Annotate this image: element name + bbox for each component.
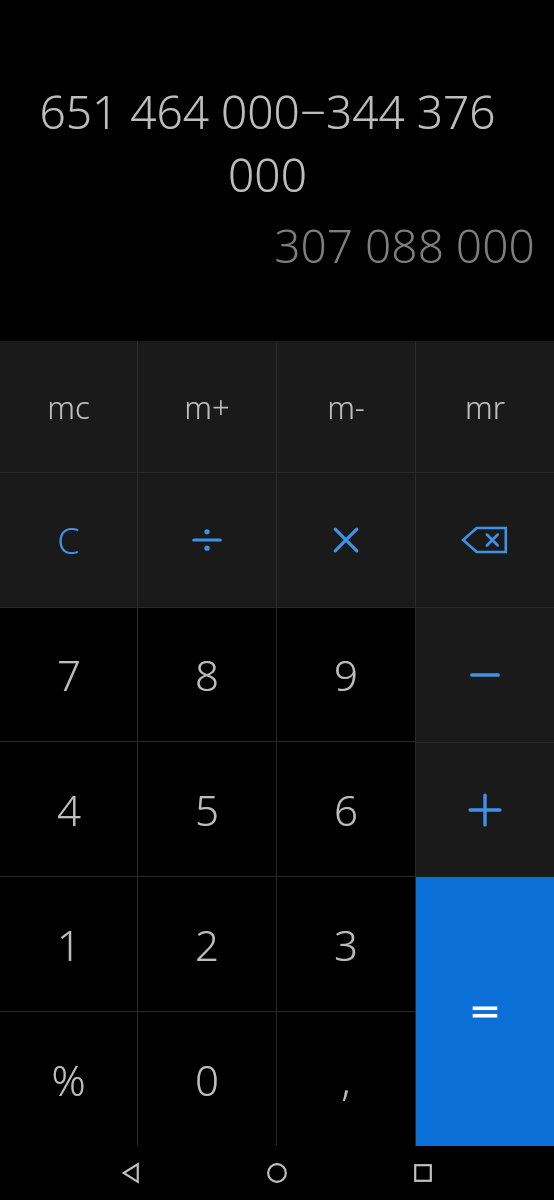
staticText: m- bbox=[327, 386, 365, 428]
button[interactable]: Home bbox=[249, 1146, 305, 1200]
button[interactable]: 1 bbox=[0, 877, 137, 1011]
button[interactable]: Equals bbox=[416, 877, 554, 1146]
staticText: 7 bbox=[57, 646, 81, 703]
button[interactable]: 9 bbox=[277, 608, 415, 741]
button[interactable]: 5 bbox=[138, 742, 276, 876]
staticText: % bbox=[51, 1051, 86, 1108]
button[interactable]: , bbox=[277, 1012, 415, 1146]
staticText: 3 bbox=[334, 916, 358, 973]
staticText: 9 bbox=[334, 646, 358, 703]
button[interactable]: Recents bbox=[395, 1146, 451, 1200]
staticText: 2 bbox=[195, 916, 219, 973]
button[interactable]: mr bbox=[416, 341, 554, 472]
button[interactable]: mc bbox=[0, 341, 137, 472]
button[interactable]: 3 bbox=[277, 877, 415, 1011]
staticText: mr bbox=[465, 386, 505, 428]
staticText: , bbox=[341, 1051, 351, 1108]
staticText: 0 bbox=[195, 1051, 219, 1108]
staticText: mc bbox=[47, 386, 90, 428]
button[interactable]: 6 bbox=[277, 742, 415, 876]
staticText: 5 bbox=[195, 781, 219, 838]
staticText: 4 bbox=[57, 781, 81, 838]
button[interactable]: Backspace bbox=[416, 473, 554, 607]
staticText: 307 088 000 bbox=[274, 214, 535, 277]
staticText: 1 bbox=[57, 916, 81, 973]
button[interactable]: Back bbox=[103, 1146, 159, 1200]
button[interactable]: m+ bbox=[138, 341, 276, 472]
button[interactable]: Plus bbox=[416, 743, 554, 877]
staticText: C bbox=[57, 516, 80, 565]
staticText: 8 bbox=[195, 646, 219, 703]
button[interactable]: Multiply bbox=[277, 473, 415, 607]
button[interactable]: m- bbox=[277, 341, 415, 472]
staticText: m+ bbox=[184, 386, 230, 428]
button[interactable]: Divide bbox=[138, 473, 276, 607]
button[interactable]: 2 bbox=[138, 877, 276, 1011]
button[interactable]: 0 bbox=[138, 1012, 276, 1146]
staticText: 651 464 000−344 376 000 bbox=[0, 80, 535, 206]
button[interactable]: 8 bbox=[138, 608, 276, 741]
button[interactable]: C bbox=[0, 473, 137, 607]
button[interactable]: 7 bbox=[0, 608, 137, 741]
button[interactable]: % bbox=[0, 1012, 137, 1146]
button[interactable]: Minus bbox=[416, 608, 554, 742]
staticText: 6 bbox=[334, 781, 358, 838]
button[interactable]: 4 bbox=[0, 742, 137, 876]
